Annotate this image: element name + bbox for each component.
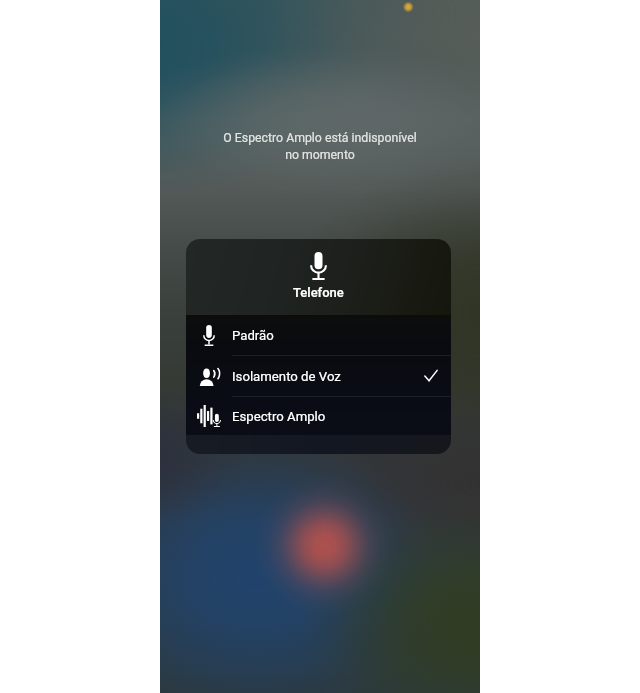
button[interactable]: Isolamento de Voz [186, 356, 451, 396]
staticText: Espectro Amplo [232, 409, 326, 424]
staticText: Padrão [232, 328, 274, 343]
staticText: Telefone [293, 285, 344, 300]
staticText: Isolamento de Voz [232, 369, 341, 384]
button[interactable]: Telefone microphone mode [186, 239, 451, 315]
button[interactable]: Espectro Amplo [186, 397, 451, 435]
button[interactable]: Padrão [186, 315, 451, 355]
staticText: O Espectro Amplo está indisponível no mo… [223, 131, 417, 162]
